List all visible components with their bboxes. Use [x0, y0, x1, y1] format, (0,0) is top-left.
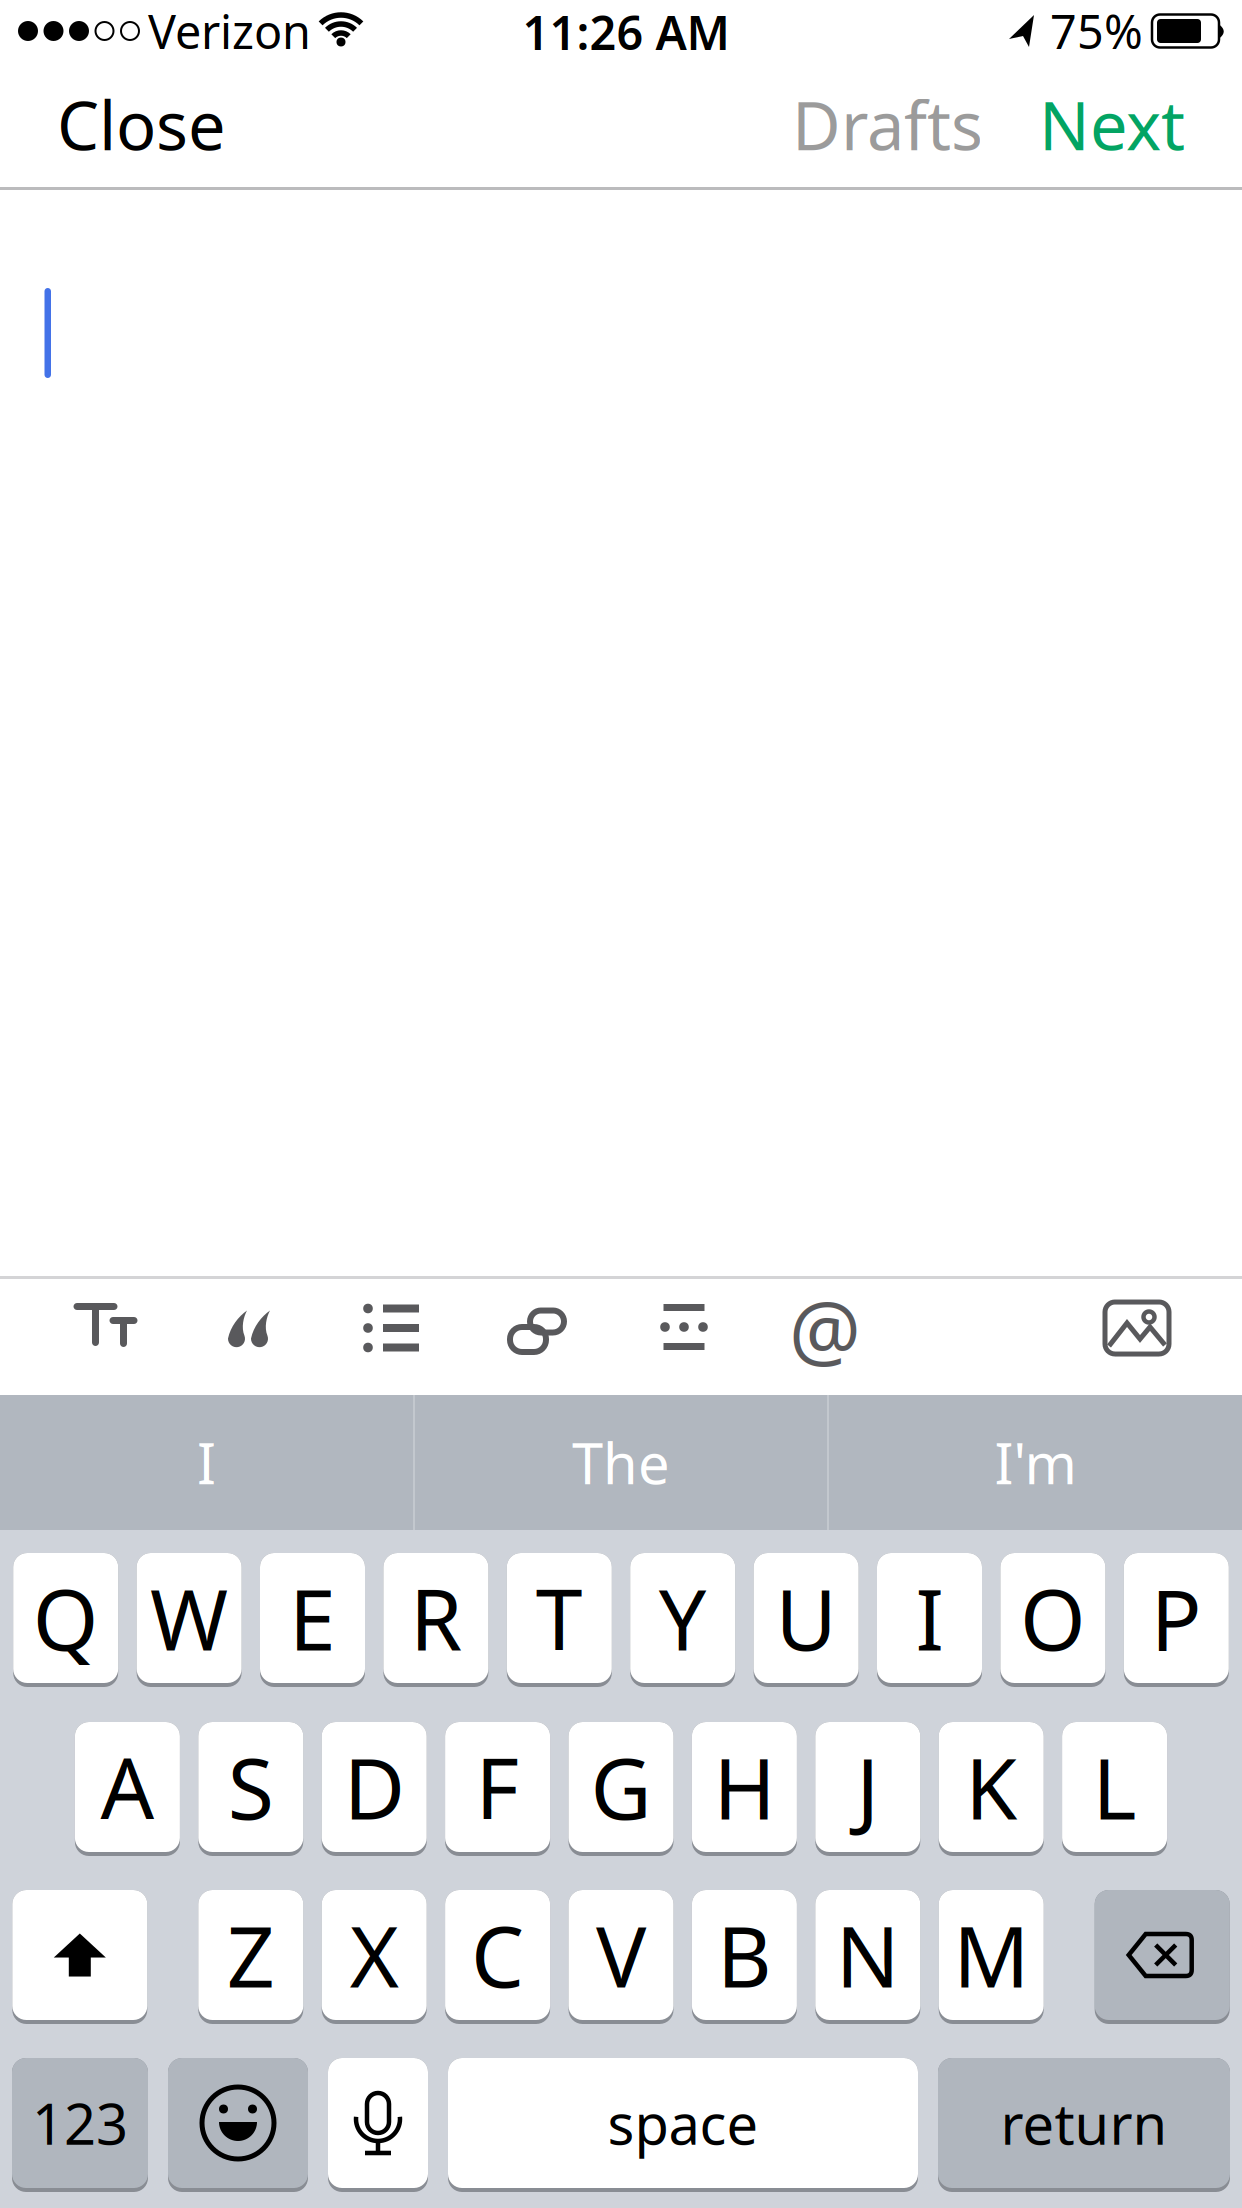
- button[interactable]: O: [1000, 1553, 1105, 1687]
- staticText: return: [1000, 2086, 1167, 2160]
- button[interactable]: T: [507, 1553, 612, 1687]
- button[interactable]: C: [445, 1890, 550, 2024]
- button[interactable]: Y: [630, 1553, 735, 1687]
- staticText: I: [197, 1425, 216, 1500]
- button[interactable]: [168, 2058, 308, 2192]
- button[interactable]: @: [789, 1276, 861, 1382]
- button[interactable]: I: [877, 1553, 982, 1687]
- staticText: V: [596, 1899, 646, 2011]
- button[interactable]: V: [568, 1890, 673, 2024]
- staticText: space: [607, 2086, 758, 2160]
- button[interactable]: [508, 1308, 566, 1353]
- staticText: Verizon: [148, 0, 311, 62]
- button[interactable]: E: [260, 1553, 365, 1687]
- button[interactable]: Next: [1039, 80, 1185, 169]
- button[interactable]: M: [939, 1890, 1044, 2024]
- staticText: Q: [33, 1562, 99, 1674]
- staticText: The: [572, 1425, 670, 1500]
- button[interactable]: [328, 2058, 428, 2192]
- staticText: L: [1093, 1731, 1137, 1843]
- staticText: B: [717, 1899, 772, 2011]
- staticText: @: [789, 1276, 861, 1382]
- button[interactable]: [363, 1304, 423, 1350]
- button[interactable]: The: [415, 1395, 827, 1530]
- button[interactable]: X: [322, 1890, 427, 2024]
- staticText: J: [856, 1731, 879, 1843]
- button[interactable]: [12, 1890, 147, 2024]
- staticText: T: [536, 1562, 583, 1674]
- staticText: S: [228, 1731, 274, 1843]
- button[interactable]: D: [322, 1722, 427, 1856]
- staticText: Z: [227, 1899, 275, 2011]
- staticText: R: [410, 1562, 462, 1674]
- staticText: O: [1020, 1562, 1086, 1674]
- staticText: Next: [1039, 80, 1185, 169]
- staticText: C: [471, 1899, 524, 2011]
- button[interactable]: I'm: [829, 1395, 1242, 1530]
- staticText: M: [953, 1899, 1029, 2011]
- staticText: U: [776, 1562, 837, 1674]
- staticText: K: [965, 1731, 1017, 1843]
- button[interactable]: [1095, 1890, 1230, 2024]
- button[interactable]: N: [815, 1890, 920, 2024]
- button[interactable]: [227, 1310, 272, 1347]
- staticText: 123: [32, 2086, 128, 2160]
- button[interactable]: Q: [13, 1553, 118, 1687]
- button[interactable]: [1104, 1301, 1170, 1355]
- staticText: 75%: [1050, 0, 1143, 62]
- staticText: E: [289, 1562, 336, 1674]
- button[interactable]: Z: [198, 1890, 303, 2024]
- staticText: X: [350, 1899, 399, 2011]
- staticText: G: [590, 1731, 651, 1843]
- staticText: Drafts: [792, 80, 983, 169]
- staticText: D: [344, 1731, 405, 1843]
- staticText: P: [1151, 1562, 1202, 1674]
- staticText: Close: [57, 80, 226, 169]
- button[interactable]: I: [0, 1395, 413, 1530]
- button[interactable]: G: [568, 1722, 673, 1856]
- button[interactable]: 123: [12, 2058, 148, 2192]
- staticText: H: [713, 1731, 775, 1843]
- button[interactable]: U: [754, 1553, 859, 1687]
- button[interactable]: R: [383, 1553, 488, 1687]
- staticText: W: [150, 1562, 228, 1674]
- button[interactable]: W: [137, 1553, 242, 1687]
- button[interactable]: return: [938, 2058, 1230, 2192]
- staticText: I: [915, 1562, 943, 1674]
- button[interactable]: Drafts: [792, 80, 983, 169]
- button[interactable]: B: [692, 1890, 797, 2024]
- button[interactable]: L: [1062, 1722, 1167, 1856]
- button[interactable]: K: [939, 1722, 1044, 1856]
- button[interactable]: [660, 1304, 708, 1350]
- staticText: Y: [659, 1562, 707, 1674]
- staticText: 11:26 AM: [522, 1, 729, 63]
- staticText: I'm: [994, 1425, 1076, 1500]
- staticText: F: [476, 1731, 520, 1843]
- button[interactable]: Close: [57, 80, 226, 169]
- staticText: N: [836, 1899, 900, 2011]
- button[interactable]: A: [75, 1722, 180, 1856]
- button[interactable]: S: [198, 1722, 303, 1856]
- button[interactable]: H: [692, 1722, 797, 1856]
- button[interactable]: [73, 1303, 138, 1349]
- button[interactable]: F: [445, 1722, 550, 1856]
- button[interactable]: P: [1124, 1553, 1229, 1687]
- staticText: A: [100, 1731, 154, 1843]
- button[interactable]: space: [448, 2058, 918, 2192]
- button[interactable]: J: [815, 1722, 920, 1856]
